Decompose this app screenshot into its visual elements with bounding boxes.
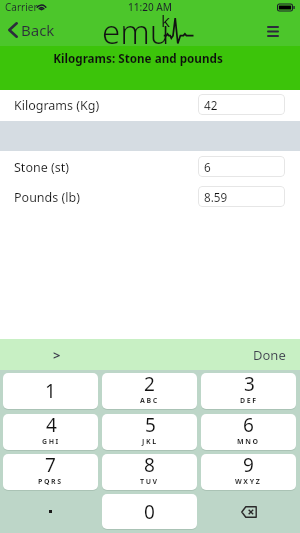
staticText: 8.59 xyxy=(204,189,228,205)
staticText: 4 xyxy=(46,412,57,438)
staticText: > xyxy=(53,346,61,364)
staticText: 5 xyxy=(145,412,156,438)
button[interactable]: 4 xyxy=(3,414,98,450)
button[interactable]: Done xyxy=(239,339,300,370)
button[interactable]: 1 xyxy=(3,373,98,409)
staticText: 3 xyxy=(244,371,255,397)
staticText: ABC xyxy=(140,396,159,406)
staticText: TUV xyxy=(140,477,159,487)
staticText: Done xyxy=(253,346,286,364)
button[interactable]: Menu xyxy=(259,15,287,47)
staticText: Back xyxy=(21,20,55,40)
button[interactable]: Decimal point xyxy=(3,494,98,529)
staticText: 7 xyxy=(45,452,56,478)
staticText: 42 xyxy=(204,97,218,113)
staticText: Kilograms: Stone and pounds xyxy=(53,50,223,66)
button[interactable]: 7 xyxy=(3,454,98,490)
staticText: 6 xyxy=(243,412,254,438)
staticText: 1 xyxy=(45,378,56,404)
staticText: JKL xyxy=(142,437,158,447)
staticText: 11:20 AM xyxy=(128,0,172,14)
button[interactable]: 8 xyxy=(102,454,197,490)
button[interactable]: 3 xyxy=(201,373,296,409)
staticText: DEF xyxy=(240,396,258,406)
staticText: WXYZ xyxy=(235,477,262,487)
button[interactable]: 0 xyxy=(102,494,197,529)
button[interactable]: Backspace xyxy=(201,494,296,529)
button[interactable]: Back xyxy=(0,14,63,46)
staticText: GHI xyxy=(42,437,60,447)
button[interactable]: 9 xyxy=(201,454,296,490)
staticText: 9 xyxy=(243,452,254,478)
staticText: 2 xyxy=(144,371,155,397)
button[interactable]: 2 xyxy=(102,373,197,409)
staticText: Carrier xyxy=(5,0,38,14)
staticText: Pounds (lb) xyxy=(14,189,80,206)
button[interactable]: Next field xyxy=(40,339,74,370)
button[interactable]: 6 xyxy=(198,156,285,177)
staticText: emu xyxy=(102,9,170,54)
staticText: 0 xyxy=(144,499,155,525)
button[interactable]: 8.59 xyxy=(198,186,285,207)
staticText: 8 xyxy=(144,452,155,478)
staticText: MNO xyxy=(237,437,260,447)
button[interactable]: 42 xyxy=(198,94,285,115)
staticText: k xyxy=(161,9,171,32)
staticText: PQRS xyxy=(38,477,63,487)
staticText: Kilograms (Kg) xyxy=(14,97,100,114)
staticText: Stone (st) xyxy=(14,159,69,176)
button[interactable]: 6 xyxy=(201,414,296,450)
button[interactable]: 5 xyxy=(102,414,197,450)
staticText: 6 xyxy=(204,159,211,175)
